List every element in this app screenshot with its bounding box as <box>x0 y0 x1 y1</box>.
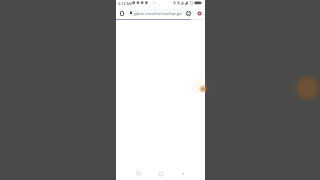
button[interactable]: Record <box>196 9 202 17</box>
staticText: gbox.com/vic/exchange <box>134 10 182 16</box>
button[interactable]: Back <box>177 168 188 179</box>
button[interactable]: Recents <box>133 168 144 179</box>
button[interactable]: Home <box>155 168 166 179</box>
button[interactable]: Profile <box>185 9 191 17</box>
button[interactable]: gbox.com/vic/exchange <box>127 9 184 16</box>
button[interactable]: Home <box>118 9 125 17</box>
staticText: 4:28 AM <box>118 1 133 6</box>
